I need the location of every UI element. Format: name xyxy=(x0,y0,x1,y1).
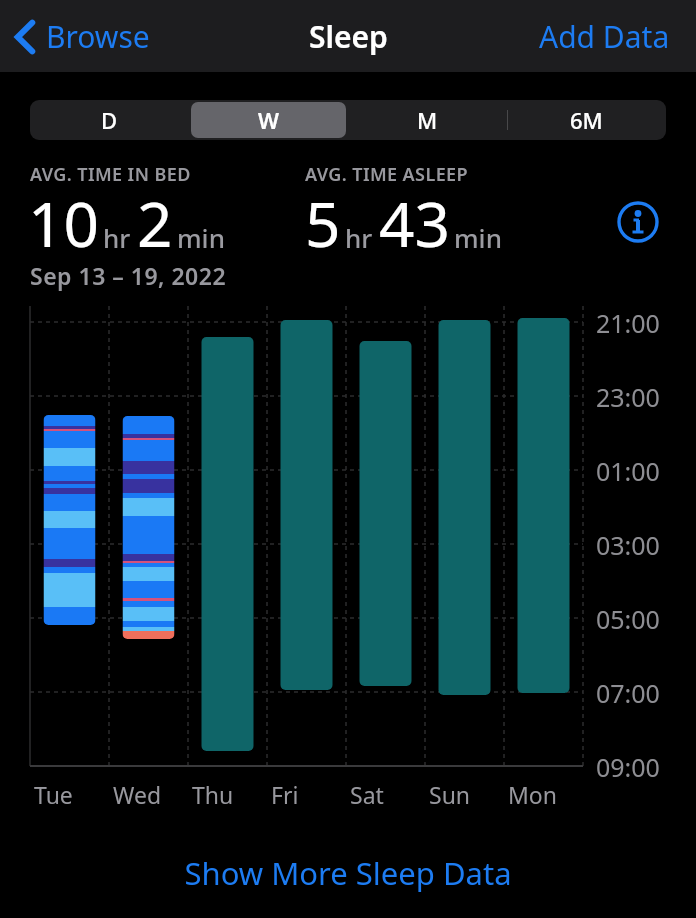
staticText: 6M xyxy=(570,105,603,135)
button[interactable]: Show More Sleep Data xyxy=(184,852,512,894)
staticText: Add Data xyxy=(539,16,670,57)
staticText: M xyxy=(417,105,438,135)
staticText: Sat xyxy=(350,779,384,810)
staticText: Sun xyxy=(429,779,471,810)
staticText: 23:00 xyxy=(596,380,660,414)
staticText: min xyxy=(454,220,502,255)
staticText: min xyxy=(177,220,225,255)
staticText: hr xyxy=(345,220,373,255)
button[interactable] xyxy=(616,200,660,244)
staticText: AVG. TIME IN BED xyxy=(30,162,191,187)
staticText: Browse xyxy=(46,16,150,57)
staticText: W xyxy=(258,105,279,135)
staticText: Fri xyxy=(271,779,299,810)
staticText: 07:00 xyxy=(596,676,660,710)
staticText: 01:00 xyxy=(596,454,660,488)
staticText: 21:00 xyxy=(596,306,660,340)
button[interactable]: 6M xyxy=(507,100,666,140)
staticText: Sleep xyxy=(309,16,388,57)
staticText: Thu xyxy=(192,779,234,810)
button[interactable]: W xyxy=(189,100,348,140)
staticText: 09:00 xyxy=(596,750,660,784)
button[interactable]: Browse xyxy=(12,16,150,57)
staticText: 05:00 xyxy=(596,602,660,636)
staticText: Show More Sleep Data xyxy=(184,852,512,894)
button[interactable]: M xyxy=(348,100,507,140)
staticText: D xyxy=(101,105,118,135)
staticText: Mon xyxy=(508,779,557,810)
button[interactable]: D xyxy=(30,100,189,140)
staticText: Sep 13 – 19, 2022 xyxy=(30,260,227,291)
staticText: 43 xyxy=(379,181,450,265)
staticText: 03:00 xyxy=(596,528,660,562)
staticText: 2 xyxy=(137,181,173,265)
staticText: 5 xyxy=(305,181,341,265)
staticText: Wed xyxy=(113,779,162,810)
staticText: Tue xyxy=(34,779,73,810)
button[interactable]: Add Data xyxy=(539,16,670,57)
staticText: 10 xyxy=(28,181,99,265)
staticText: hr xyxy=(103,220,131,255)
staticText: AVG. TIME ASLEEP xyxy=(305,162,468,187)
